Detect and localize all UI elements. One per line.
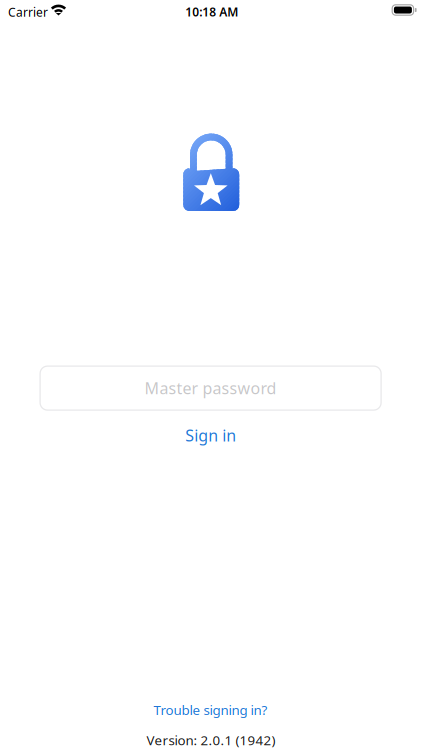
staticText: Trouble signing in?: [154, 701, 268, 719]
staticText: Carrier: [8, 4, 48, 20]
staticText: Master password: [145, 377, 277, 399]
staticText: Version: 2.0.1 (1942): [146, 731, 275, 749]
staticText: 10:18 AM: [185, 4, 238, 20]
staticText: Sign in: [185, 425, 236, 446]
button[interactable]: Trouble signing in?: [111, 699, 311, 720]
button[interactable]: Sign in: [151, 422, 271, 448]
